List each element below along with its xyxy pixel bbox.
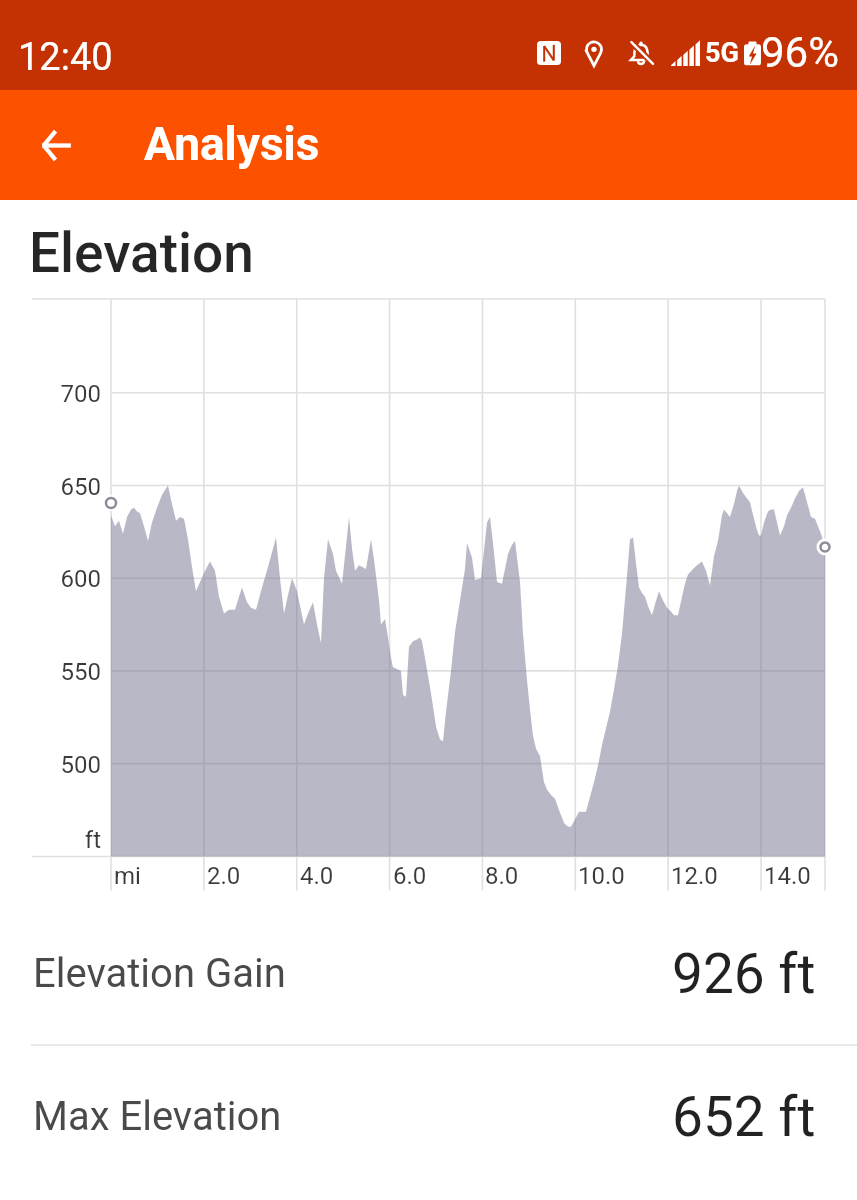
staticText: 96% xyxy=(761,28,839,77)
staticText: 10.0 xyxy=(578,862,668,890)
staticText: 600 xyxy=(11,565,101,593)
staticText: 12.0 xyxy=(671,862,761,890)
staticText: 700 xyxy=(11,380,101,408)
staticText: 8.0 xyxy=(485,862,575,890)
button[interactable]: Max Elevation xyxy=(0,1046,857,1187)
staticText: 12:40 xyxy=(18,35,113,80)
staticText: Analysis xyxy=(144,117,320,171)
staticText: ft xyxy=(11,826,101,854)
staticText: 6.0 xyxy=(393,862,483,890)
staticText: Elevation Gain xyxy=(33,950,286,997)
staticText: 14.0 xyxy=(764,862,854,890)
button[interactable]: Back xyxy=(18,107,94,183)
staticText: 500 xyxy=(11,751,101,779)
staticText: 5G xyxy=(705,37,739,69)
staticText: Elevation xyxy=(29,221,254,285)
button[interactable]: Elevation Gain xyxy=(0,903,857,1044)
staticText: 650 xyxy=(11,473,101,501)
staticText: 652 ft xyxy=(672,1085,816,1149)
staticText: 926 ft xyxy=(672,942,816,1006)
staticText: 2.0 xyxy=(207,862,297,890)
staticText: 4.0 xyxy=(300,862,390,890)
staticText: 550 xyxy=(11,658,101,686)
staticText: Max Elevation xyxy=(33,1093,282,1140)
staticText: mi xyxy=(114,862,204,890)
